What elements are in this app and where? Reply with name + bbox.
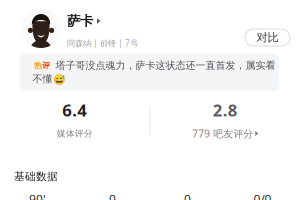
staticText: 2.8: [213, 99, 238, 121]
button[interactable]: 6.4: [0, 103, 149, 138]
staticText: 90': [29, 191, 46, 200]
staticText: 0: [109, 191, 116, 200]
staticText: 萨卡: [67, 13, 93, 29]
staticText: 0/0: [253, 191, 271, 200]
staticText: 媒体评分: [57, 128, 93, 139]
staticText: 对比: [256, 30, 278, 45]
button[interactable]: 对比: [245, 29, 290, 46]
staticText: 热: [34, 60, 42, 71]
button[interactable]: 2.8: [150, 103, 300, 138]
button[interactable]: 热: [19, 54, 279, 91]
staticText: 基础数据: [14, 170, 58, 183]
staticText: 评: [42, 60, 50, 71]
staticText: 阿森纳 | 前锋 | 7号: [67, 37, 138, 49]
staticText: 塔子哥没点魂力，萨卡这状态还一直首发，属实看: [55, 59, 275, 72]
staticText: 不懂😅: [32, 73, 64, 85]
staticText: 779 吧友评分: [192, 127, 253, 140]
staticText: 6.4: [62, 99, 87, 121]
staticText: 0: [184, 191, 191, 200]
